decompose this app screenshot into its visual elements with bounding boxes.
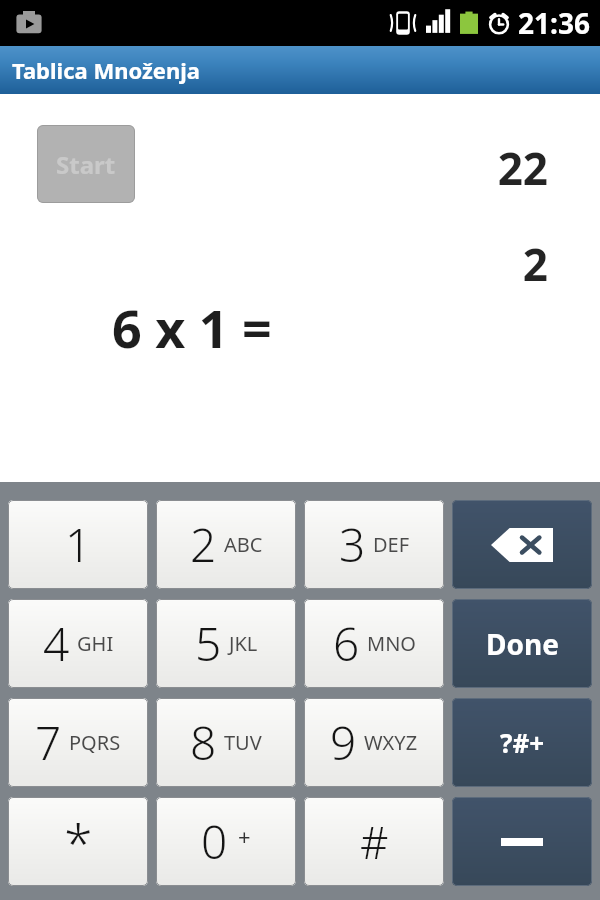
staticText: Done xyxy=(486,625,559,663)
staticText: 7 xyxy=(35,711,62,774)
staticText: 22 xyxy=(497,138,548,198)
staticText: GHI xyxy=(77,630,114,657)
button[interactable]: 3 xyxy=(304,500,444,589)
staticText: Tablica Množenja xyxy=(12,55,200,85)
staticText: 2 xyxy=(522,234,548,294)
staticText: 6 xyxy=(333,612,360,675)
button[interactable]: Minus xyxy=(452,797,592,886)
button[interactable]: 7 xyxy=(8,698,148,787)
staticText: WXYZ xyxy=(364,729,418,756)
staticText: MNO xyxy=(367,630,416,657)
staticText: 0 xyxy=(201,810,228,873)
button[interactable]: # xyxy=(304,797,444,886)
button[interactable]: 0 xyxy=(156,797,296,886)
staticText: 9 xyxy=(330,711,357,774)
staticText: 21:36 xyxy=(518,4,590,42)
staticText: PQRS xyxy=(69,729,121,756)
staticText: 3 xyxy=(339,513,366,576)
button[interactable]: 1 xyxy=(8,500,148,589)
button[interactable]: 2 xyxy=(156,500,296,589)
button[interactable]: 9 xyxy=(304,698,444,787)
button[interactable]: 4 xyxy=(8,599,148,688)
staticText: 4 xyxy=(43,612,70,675)
staticText: 6 x 1 = xyxy=(112,292,272,363)
staticText: TUV xyxy=(224,729,262,756)
staticText: * xyxy=(64,806,93,877)
staticText: DEF xyxy=(373,531,410,558)
staticText: 5 xyxy=(195,612,222,675)
button[interactable]: * xyxy=(8,797,148,886)
staticText: 1 xyxy=(65,513,92,576)
button[interactable]: ?#+ xyxy=(452,698,592,787)
staticText: ABC xyxy=(224,531,263,558)
staticText: JKL xyxy=(229,630,258,657)
staticText: ?#+ xyxy=(500,725,545,760)
staticText: + xyxy=(238,821,251,851)
staticText: 2 xyxy=(190,513,217,576)
button[interactable]: Backspace xyxy=(452,500,592,589)
button[interactable]: 8 xyxy=(156,698,296,787)
button[interactable]: Start xyxy=(37,125,135,203)
button[interactable]: Done xyxy=(452,599,592,688)
button[interactable]: 6 xyxy=(304,599,444,688)
button[interactable]: 5 xyxy=(156,599,296,688)
staticText: # xyxy=(360,812,389,872)
staticText: Start xyxy=(56,148,116,181)
staticText: 8 xyxy=(190,711,217,774)
